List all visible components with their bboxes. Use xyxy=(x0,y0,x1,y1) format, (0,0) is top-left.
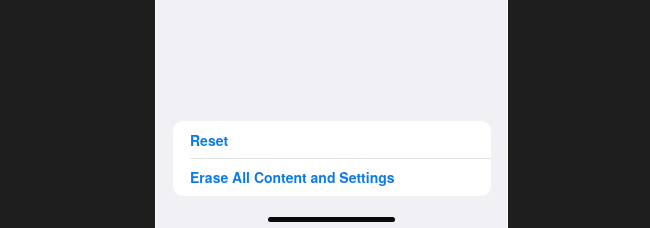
other: Home indicator xyxy=(268,217,395,222)
button[interactable]: Erase All Content and Settings xyxy=(173,159,491,196)
button[interactable]: Reset xyxy=(173,121,491,158)
staticText: Erase All Content and Settings xyxy=(190,167,395,187)
staticText: Reset xyxy=(190,130,229,150)
